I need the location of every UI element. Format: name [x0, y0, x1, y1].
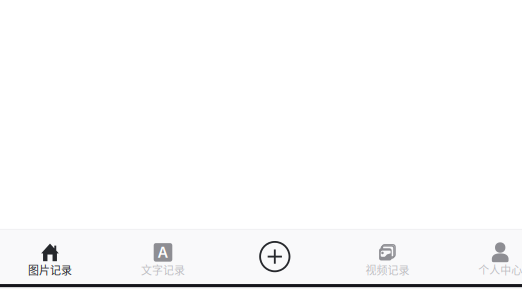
button[interactable]: 个人中心	[448, 239, 522, 289]
staticText: 文字记录	[141, 262, 185, 278]
staticText: A	[157, 243, 168, 261]
button[interactable]: A	[111, 239, 215, 289]
button[interactable]: 新建记录	[245, 231, 305, 283]
staticText: 图片记录	[28, 262, 72, 278]
button[interactable]: 图片记录	[0, 239, 102, 289]
staticText: 个人中心	[478, 262, 522, 278]
button[interactable]: 视频记录	[335, 239, 439, 289]
staticText: 视频记录	[365, 262, 409, 278]
